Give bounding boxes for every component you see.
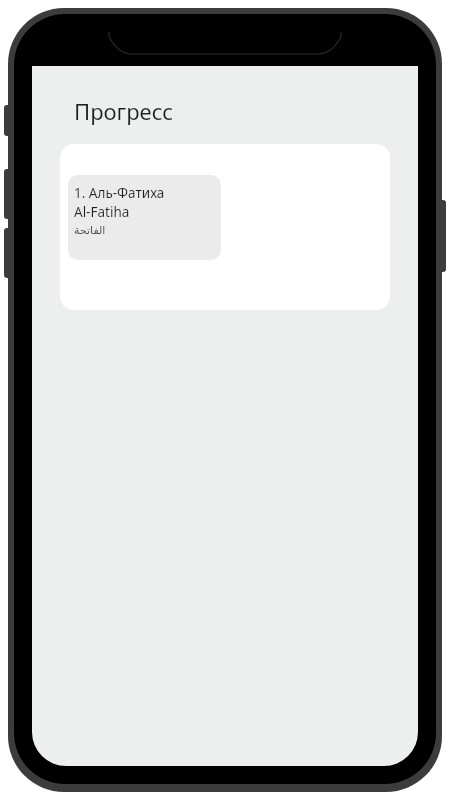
staticText: الفاتحة bbox=[74, 224, 106, 237]
button[interactable]: 1. Аль-Фатиха bbox=[68, 175, 221, 260]
staticText: Прогресс bbox=[74, 96, 174, 126]
staticText: Al-Fatiha bbox=[74, 203, 130, 221]
other: Notch bbox=[32, 32, 418, 72]
staticText: 1. Аль-Фатиха bbox=[74, 184, 165, 202]
button[interactable]: 1. Аль-Фатиха bbox=[60, 144, 390, 310]
